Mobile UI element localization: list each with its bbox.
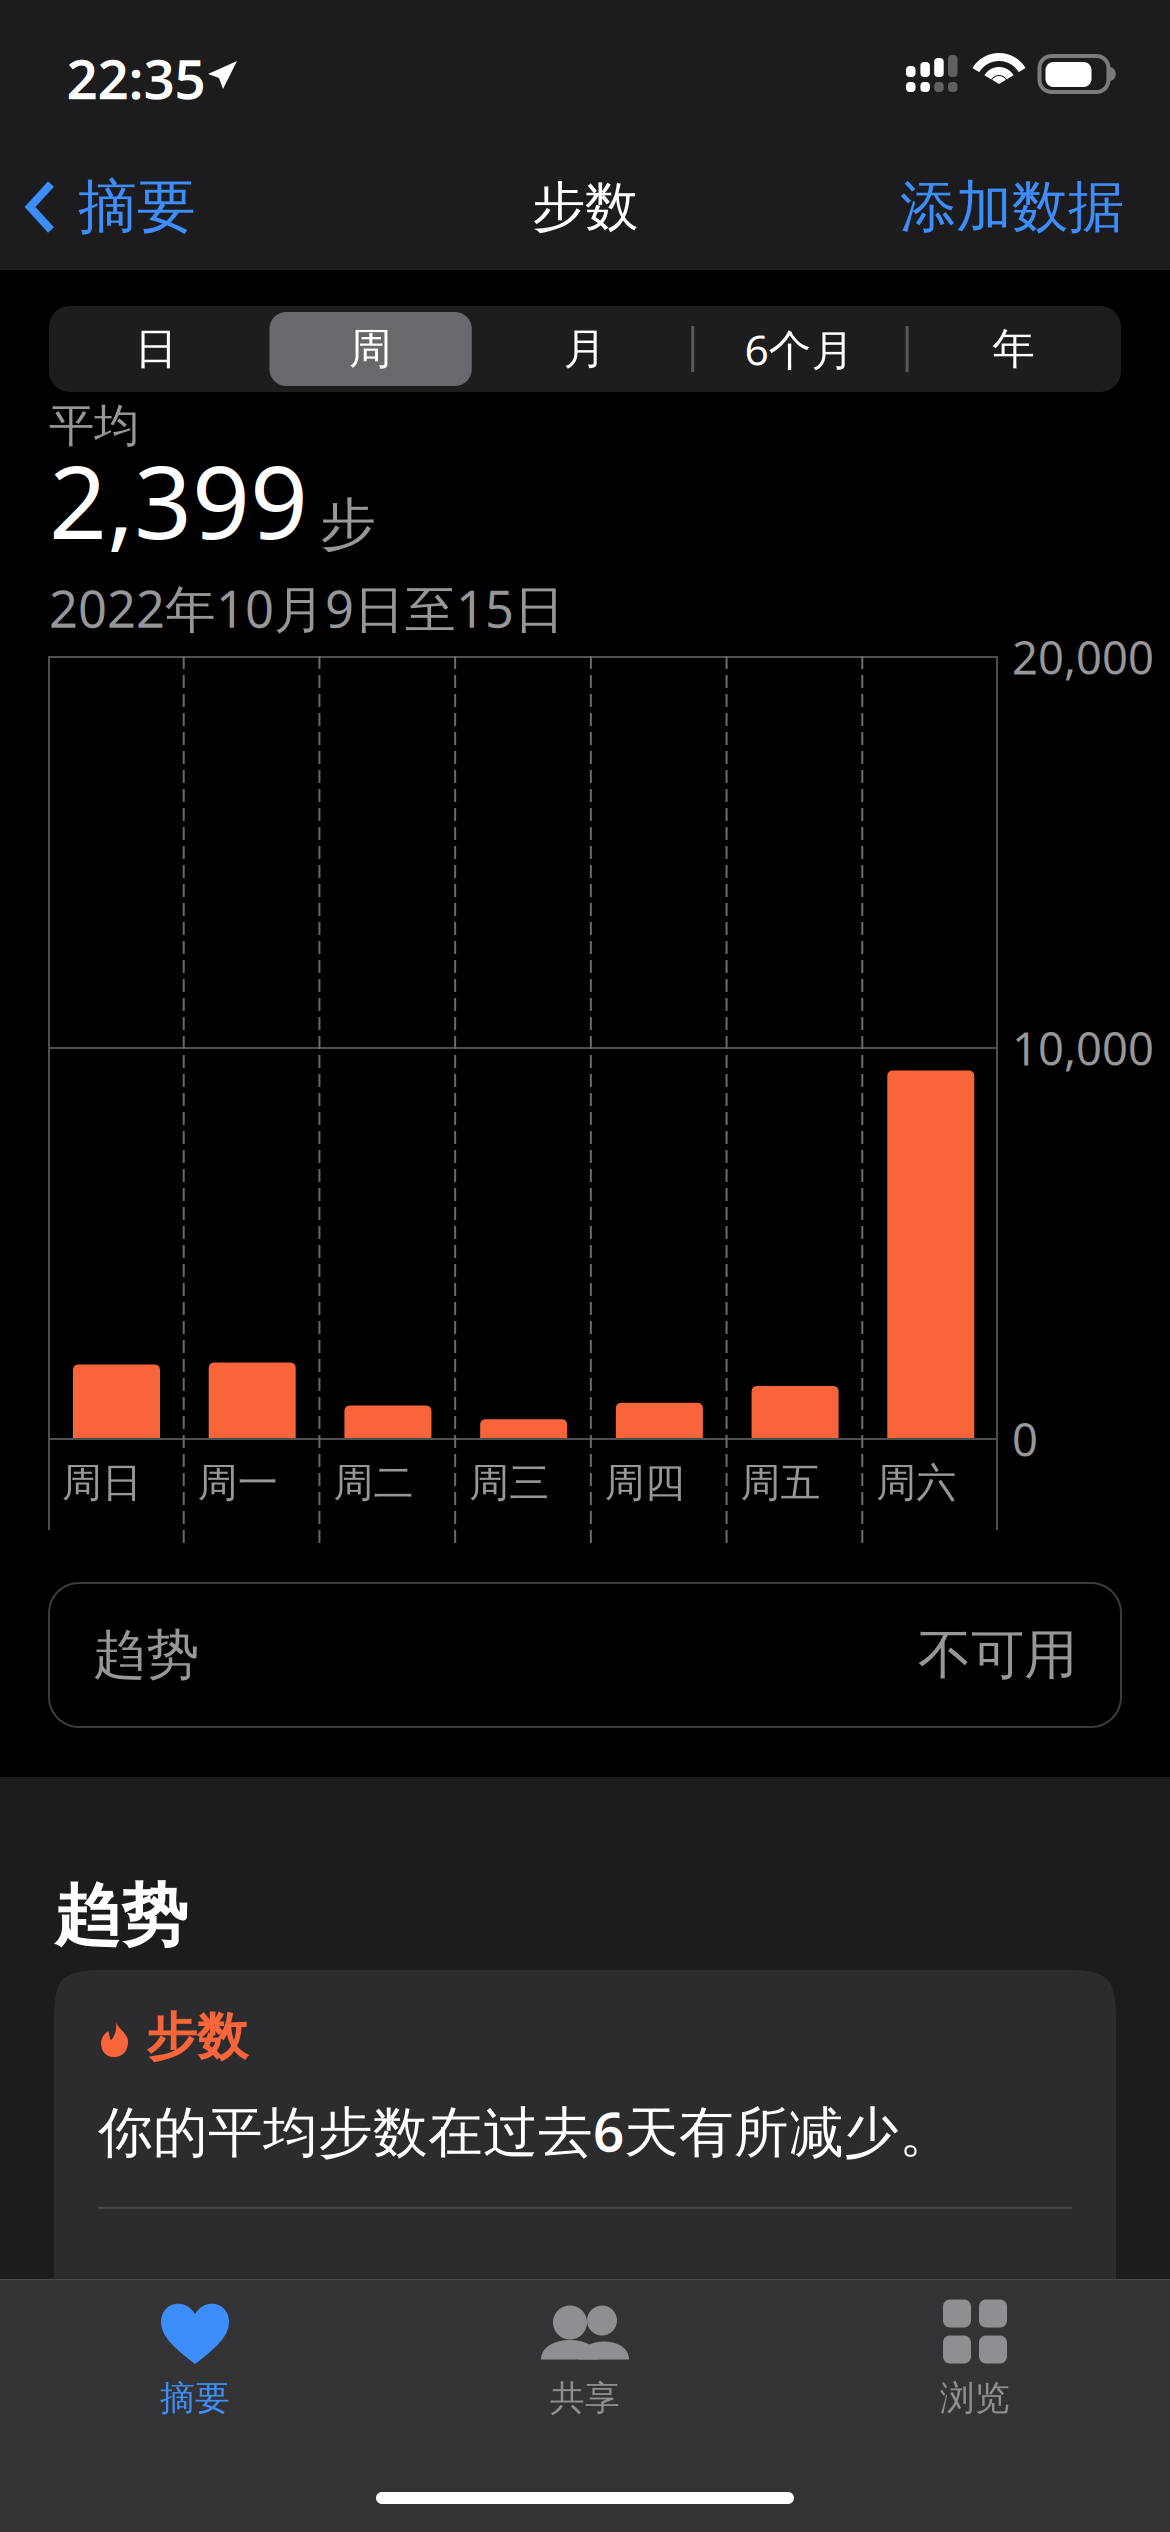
staticText: 趋势: [54, 1875, 188, 1957]
staticText: 共享: [550, 2377, 620, 2420]
staticText: 周六: [876, 1458, 956, 1507]
staticText: 摘要: [78, 171, 196, 243]
staticText: 10,000: [1012, 1018, 1154, 1078]
staticText: 日: [135, 323, 178, 375]
staticText: 趋势: [93, 1622, 199, 1688]
button[interactable]: 趋势: [49, 1583, 1121, 1727]
staticText: 周日: [62, 1458, 142, 1507]
button[interactable]: 添加数据: [880, 142, 1170, 272]
button[interactable]: 摘要: [0, 142, 216, 272]
staticText: 2022年10月9日至15日: [49, 574, 565, 642]
staticText: 周: [349, 323, 392, 375]
staticText: 摘要: [160, 2377, 230, 2420]
staticText: 年: [992, 323, 1035, 375]
staticText: 0: [1012, 1409, 1038, 1469]
staticText: 步数: [146, 2006, 248, 2068]
staticText: 6个月: [744, 321, 854, 377]
staticText: 周三: [469, 1458, 549, 1507]
staticText: 平均: [49, 398, 139, 454]
staticText: 月: [563, 323, 606, 375]
staticText: 步: [320, 490, 376, 559]
staticText: 2,399: [49, 432, 308, 567]
button[interactable]: 共享: [390, 2298, 780, 2458]
button[interactable]: 月: [478, 306, 692, 392]
button[interactable]: 浏览: [780, 2298, 1170, 2458]
staticText: 浏览: [940, 2377, 1010, 2420]
staticText: 步数: [532, 174, 638, 240]
staticText: 周四: [605, 1458, 685, 1507]
staticText: 你的平均步数在过去6天有所减少。: [98, 2094, 954, 2167]
button[interactable]: 周: [263, 306, 478, 392]
staticText: 22:35: [66, 42, 205, 114]
button[interactable]: 摘要: [0, 2298, 390, 2458]
staticText: 周一: [198, 1458, 278, 1507]
staticText: 周五: [741, 1458, 821, 1507]
button[interactable]: 年: [907, 306, 1121, 392]
button[interactable]: 6个月: [692, 306, 907, 392]
staticText: 添加数据: [900, 173, 1124, 241]
staticText: 不可用: [918, 1622, 1077, 1688]
button[interactable]: 日: [49, 306, 263, 392]
staticText: 20,000: [1012, 627, 1154, 687]
staticText: 周二: [333, 1458, 413, 1507]
